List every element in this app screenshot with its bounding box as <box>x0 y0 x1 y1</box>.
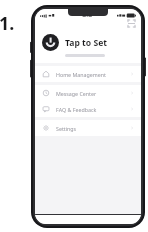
button[interactable]: Settings <box>35 120 141 136</box>
button[interactable]: Home Management <box>35 66 141 82</box>
button[interactable]: FAQ & Feedback <box>35 101 141 117</box>
button[interactable]: Message Center <box>35 85 141 101</box>
staticText: FAQ & Feedback <box>56 106 130 113</box>
staticText: Tap to Set Nickname <box>65 37 134 49</box>
staticText: Settings <box>56 125 130 132</box>
staticText: Message Center <box>56 90 130 97</box>
staticText: Home Management <box>56 71 130 78</box>
button[interactable]: Tap to Set Nickname <box>35 29 141 63</box>
staticText: 1. <box>0 11 15 35</box>
button[interactable]: Scan QR code <box>127 19 136 28</box>
